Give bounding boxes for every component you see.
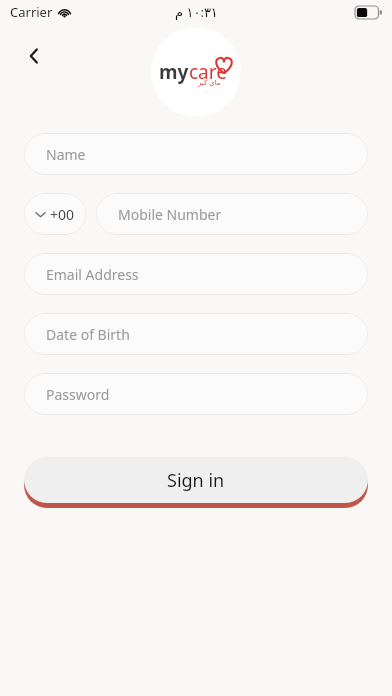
staticText: Name [46,145,86,164]
staticText: Mobile Number [118,205,222,224]
staticText: +00 [50,205,75,224]
button[interactable]: Back [14,36,54,76]
staticText: Sign in [167,468,225,493]
button[interactable]: +00 [24,193,86,235]
button[interactable]: Mobile Number [96,193,368,235]
staticText: Password [46,385,110,404]
staticText: ١٠:٣١ م [175,3,218,21]
staticText: ماي كير [198,78,221,88]
staticText: care [189,59,227,85]
button[interactable]: Date of Birth [24,313,368,355]
button[interactable]: Name [24,133,368,175]
button[interactable]: Password [24,373,368,415]
button[interactable]: Email Address [24,253,368,295]
staticText: Carrier [10,3,53,21]
staticText: my [159,59,189,85]
staticText: Date of Birth [46,325,130,344]
button[interactable]: Sign in [24,457,368,503]
staticText: Email Address [46,265,139,284]
